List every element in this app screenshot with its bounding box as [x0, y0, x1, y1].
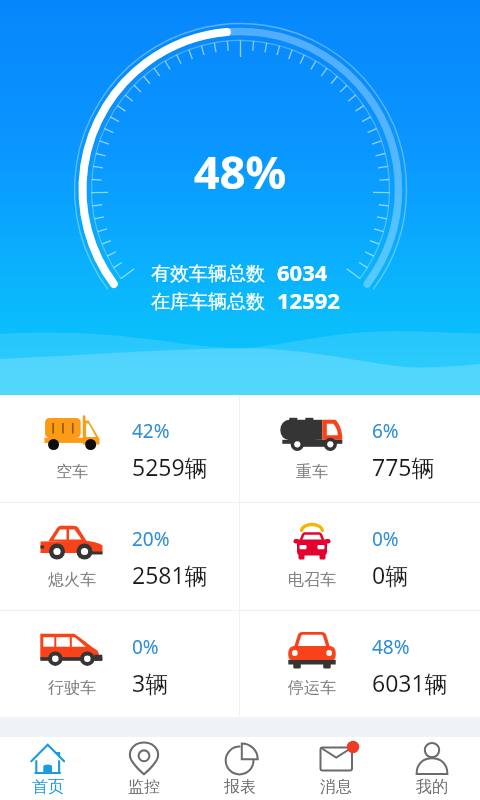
button[interactable]: 报表: [192, 737, 288, 800]
staticText: 空车: [56, 462, 88, 482]
staticText: 48%: [372, 634, 410, 660]
staticText: 行驶车: [48, 678, 96, 698]
staticText: 有效车辆总数: [151, 262, 265, 286]
button[interactable]: 首页: [0, 737, 96, 800]
button[interactable]: 监控: [96, 737, 192, 800]
staticText: 775辆: [372, 451, 435, 482]
staticText: 5259辆: [132, 451, 208, 482]
staticText: 12592: [277, 285, 340, 315]
staticText: 20%: [132, 526, 170, 552]
button[interactable]: 消息: [288, 737, 384, 800]
staticText: 0%: [132, 634, 159, 660]
button[interactable]: 行驶车: [0, 611, 239, 717]
staticText: 42%: [132, 418, 170, 444]
staticText: 首页: [32, 777, 64, 797]
staticText: 熄火车: [48, 570, 96, 590]
staticText: 6%: [372, 418, 399, 444]
staticText: 0%: [372, 526, 399, 552]
button[interactable]: 重车: [240, 395, 480, 502]
staticText: 重车: [296, 462, 328, 482]
staticText: 停运车: [288, 678, 336, 698]
staticText: 我的: [416, 777, 448, 797]
staticText: 在库车辆总数: [151, 290, 265, 314]
button[interactable]: 空车: [0, 395, 239, 502]
staticText: 6031辆: [372, 667, 448, 698]
staticText: 6034: [277, 257, 328, 287]
staticText: 48%: [194, 141, 287, 202]
staticText: 电召车: [288, 570, 336, 590]
button[interactable]: 停运车: [240, 611, 480, 717]
staticText: 消息: [320, 777, 352, 797]
button[interactable]: 电召车: [240, 503, 480, 610]
staticText: 监控: [128, 777, 160, 797]
staticText: 3辆: [132, 667, 169, 698]
button[interactable]: 我的: [384, 737, 480, 800]
staticText: 2581辆: [132, 559, 208, 590]
button[interactable]: 熄火车: [0, 503, 239, 610]
staticText: 报表: [224, 777, 256, 797]
staticText: 0辆: [372, 559, 409, 590]
